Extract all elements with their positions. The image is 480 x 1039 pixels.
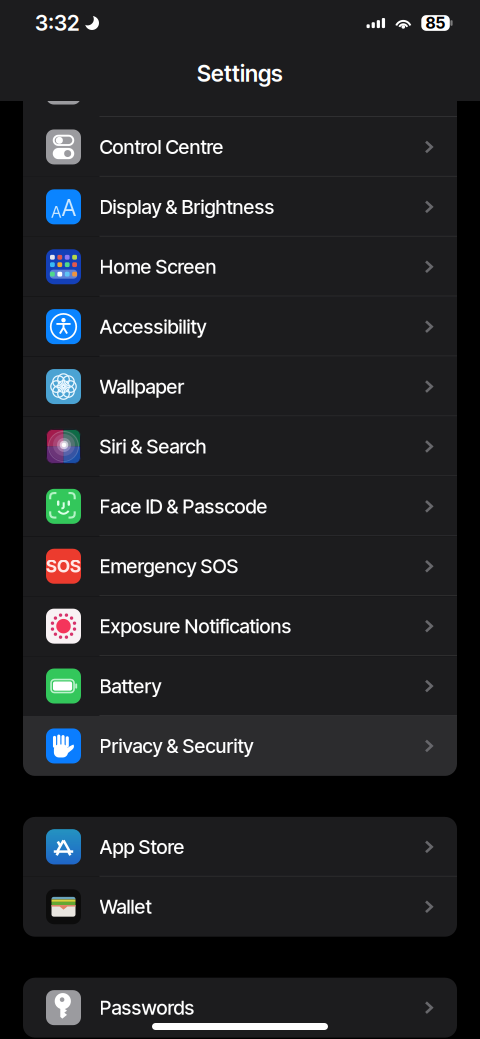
button[interactable]: Exposure Notifications	[23, 596, 457, 656]
staticText: Face ID & Passcode	[99, 495, 267, 518]
staticText: Control Centre	[99, 135, 223, 159]
button[interactable]: App Store	[23, 817, 457, 877]
staticText: A	[62, 194, 76, 221]
staticText: Passwords	[99, 996, 194, 1019]
staticText: 3:32	[35, 10, 79, 36]
staticText: Siri & Search	[99, 435, 206, 458]
button[interactable]: Home Screen	[23, 237, 457, 297]
staticText: Emergency SOS	[99, 554, 238, 578]
button[interactable]: Wallpaper	[23, 357, 457, 416]
staticText: Wallpaper	[99, 375, 184, 398]
button[interactable]: Siri & Search	[23, 416, 457, 476]
staticText: Accessibility	[99, 315, 206, 338]
button[interactable]: Control Centre	[23, 117, 457, 177]
button[interactable]: Face ID & Passcode	[23, 476, 457, 536]
button[interactable]: Accessibility	[23, 297, 457, 357]
staticText: App Store	[99, 835, 184, 859]
staticText: SOS	[46, 556, 81, 577]
staticText: 85	[426, 13, 446, 33]
button[interactable]: Privacy & Security	[23, 716, 457, 776]
button[interactable]: A	[23, 177, 457, 237]
staticText: Display & Brightness	[99, 195, 274, 219]
button[interactable]: SOS	[23, 536, 457, 596]
staticText: Home Screen	[99, 255, 216, 279]
staticText: Exposure Notifications	[99, 614, 291, 638]
button[interactable]: General	[23, 57, 457, 117]
staticText: Battery	[99, 674, 161, 698]
staticText: Wallet	[99, 895, 151, 919]
staticText: A	[51, 202, 61, 222]
button[interactable]: Wallet	[23, 877, 457, 937]
button[interactable]: Battery	[23, 656, 457, 716]
button[interactable]: Passwords	[23, 978, 457, 1038]
staticText: Privacy & Security	[99, 734, 253, 758]
staticText: Settings	[197, 60, 283, 87]
